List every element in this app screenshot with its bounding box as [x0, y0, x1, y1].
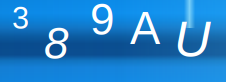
- staticText: A: [130, 3, 160, 54]
- staticText: 8: [44, 19, 68, 68]
- staticText: 3: [12, 1, 29, 35]
- staticText: U: [174, 11, 211, 68]
- staticText: 9: [90, 0, 114, 44]
